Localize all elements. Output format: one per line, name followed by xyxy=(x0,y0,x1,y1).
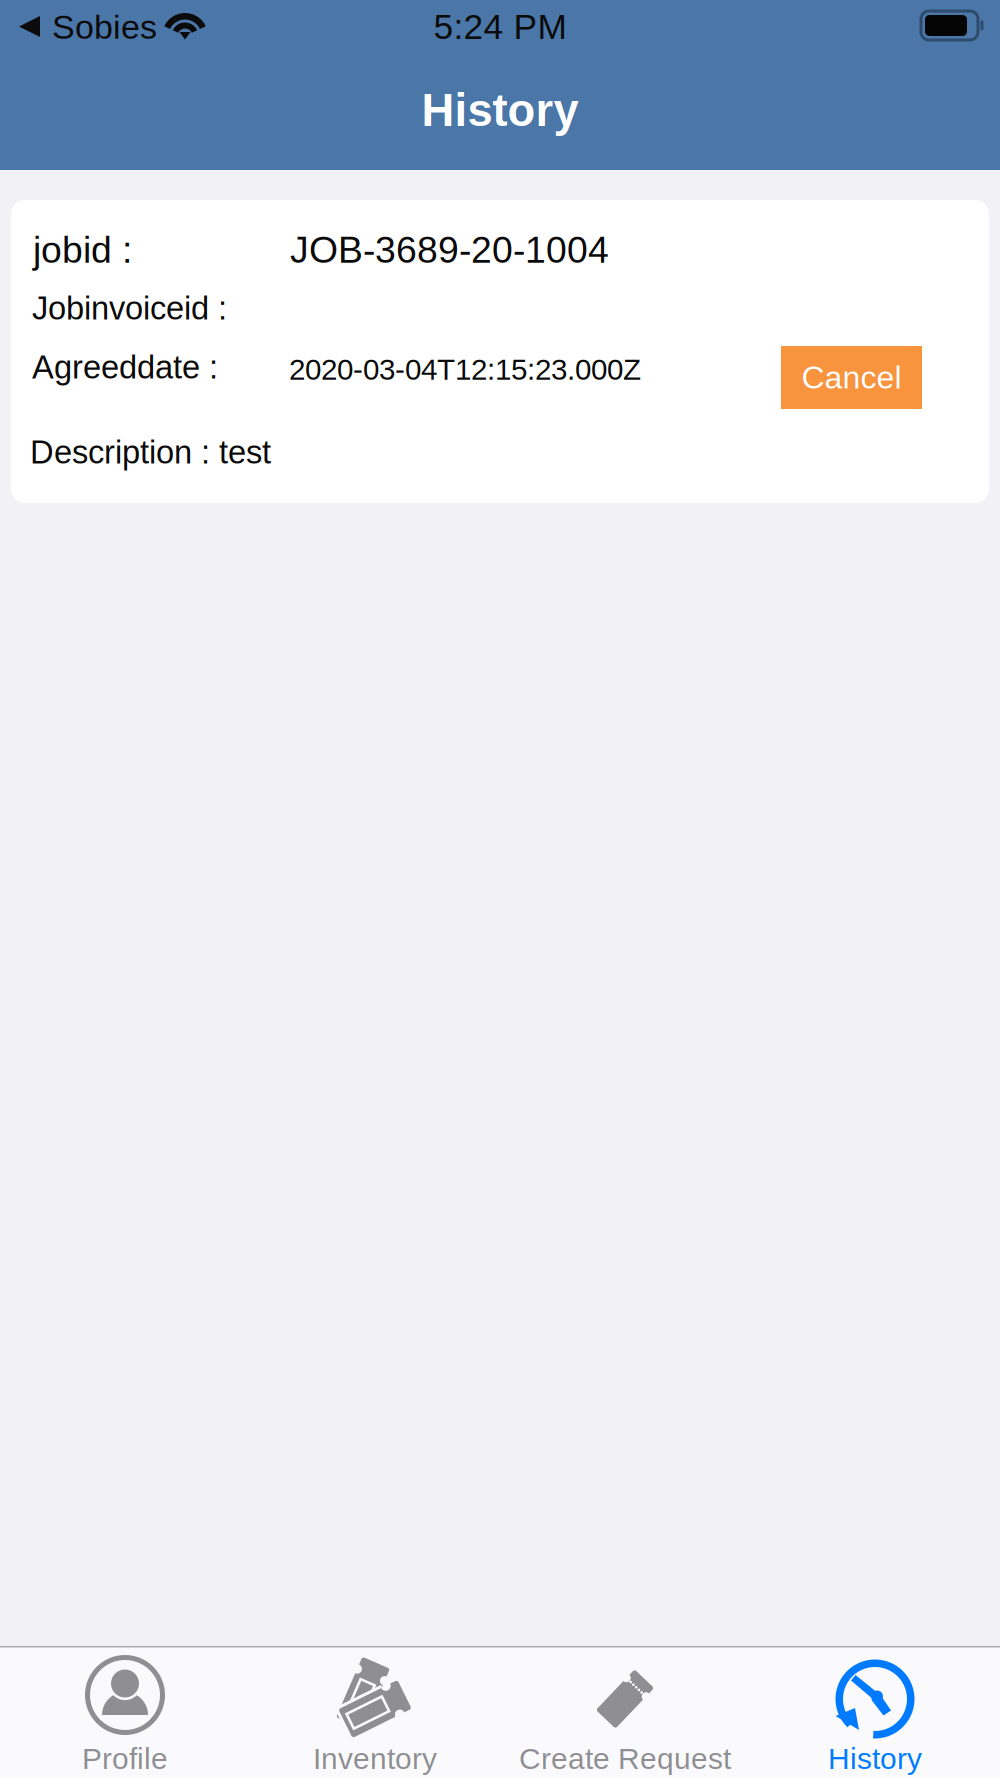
staticText: JOB-3689-20-1004 xyxy=(290,229,609,271)
staticText: Jobinvoiceid : xyxy=(32,290,227,326)
staticText: Agreeddate : xyxy=(32,349,218,385)
staticText: History xyxy=(828,1742,922,1775)
staticText: History xyxy=(421,85,578,136)
staticText: Description : test xyxy=(30,434,271,470)
button[interactable]: Profile xyxy=(0,1647,250,1778)
staticText: 5:24 PM xyxy=(433,7,566,46)
button[interactable]: History xyxy=(750,1647,1000,1778)
staticText: Cancel xyxy=(801,360,901,395)
button[interactable]: Inventory xyxy=(250,1647,500,1778)
staticText: jobid : xyxy=(33,229,132,271)
button[interactable]: Create Request xyxy=(500,1647,750,1778)
staticText: Inventory xyxy=(313,1742,437,1775)
staticText: Profile xyxy=(82,1742,168,1775)
staticText: Sobies xyxy=(52,8,157,46)
staticText: 2020-03-04T12:15:23.000Z xyxy=(289,353,641,386)
staticText: Create Request xyxy=(519,1742,731,1775)
button[interactable]: Cancel xyxy=(781,346,922,409)
